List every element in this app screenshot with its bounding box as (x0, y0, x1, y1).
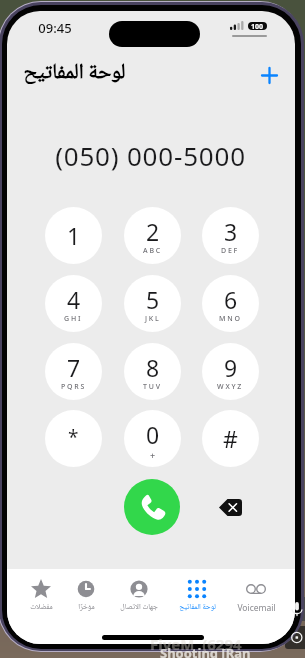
button[interactable]: 0 (124, 410, 181, 467)
staticText: لوحة المفاتيح (179, 601, 216, 614)
button[interactable]: 1 (45, 207, 102, 264)
staticText: 0 (146, 419, 160, 450)
staticText: 6 (224, 284, 238, 315)
staticText: Shooting [Ran (160, 644, 251, 658)
button[interactable]: Delete (207, 484, 253, 530)
staticText: FiveM (6294 (150, 634, 242, 654)
staticText: 4 (67, 284, 81, 315)
button[interactable]: 8 (124, 343, 181, 400)
button[interactable]: لوحة المفاتيح (169, 572, 225, 618)
button[interactable]: Call (124, 479, 180, 535)
staticText: مؤخرًا (78, 601, 95, 614)
staticText: ABC (143, 246, 163, 256)
button[interactable]: 5 (124, 275, 181, 332)
button[interactable]: 2 (124, 207, 181, 264)
staticText: 09:45 (38, 19, 72, 37)
staticText: MNO (219, 314, 242, 324)
button[interactable]: Microphone (285, 597, 305, 621)
button[interactable]: * (45, 410, 102, 467)
button[interactable]: مؤخرًا (58, 572, 114, 618)
staticText: 9 (224, 352, 238, 383)
staticText: JKL (145, 314, 161, 324)
staticText: (050) 000-5000 (55, 138, 246, 173)
button[interactable]: # (202, 410, 259, 467)
button[interactable]: 6 (202, 275, 259, 332)
staticText: لوحة المفاتيح (23, 56, 126, 84)
staticText: 2 (146, 216, 160, 247)
staticText: * (68, 424, 79, 450)
button[interactable]: Record (285, 626, 305, 649)
button[interactable]: Voicemail (228, 572, 284, 618)
button[interactable]: 3 (202, 207, 259, 264)
staticText: WXYZ (217, 382, 244, 392)
button[interactable]: 4 (45, 275, 102, 332)
button[interactable]: 7 (45, 343, 102, 400)
button[interactable]: 9 (202, 343, 259, 400)
staticText: DEF (221, 246, 240, 256)
staticText: 3 (224, 216, 238, 247)
staticText: + (150, 449, 156, 459)
button[interactable]: Add contact (252, 58, 286, 92)
staticText: PQRS (61, 382, 87, 392)
staticText: 5 (146, 284, 160, 315)
staticText: مفضلات (30, 601, 53, 614)
staticText: جهات الاتصال (120, 601, 158, 614)
staticText: 8 (146, 352, 160, 383)
staticText: 7 (67, 352, 81, 383)
staticText: # (223, 423, 238, 454)
staticText: 100 (251, 22, 264, 30)
staticText: 1 (67, 220, 81, 251)
staticText: Voicemail (237, 602, 276, 614)
staticText: GHI (64, 314, 83, 324)
button[interactable]: مفضلات (13, 572, 69, 618)
button[interactable]: جهات الاتصال (111, 572, 167, 618)
staticText: TUV (143, 382, 162, 392)
